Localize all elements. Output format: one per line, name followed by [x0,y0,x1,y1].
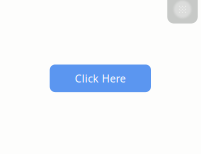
staticText: Click Here [75,71,126,85]
button[interactable]: Click Here [50,64,151,92]
button[interactable]: AssistiveTouch [167,0,198,23]
